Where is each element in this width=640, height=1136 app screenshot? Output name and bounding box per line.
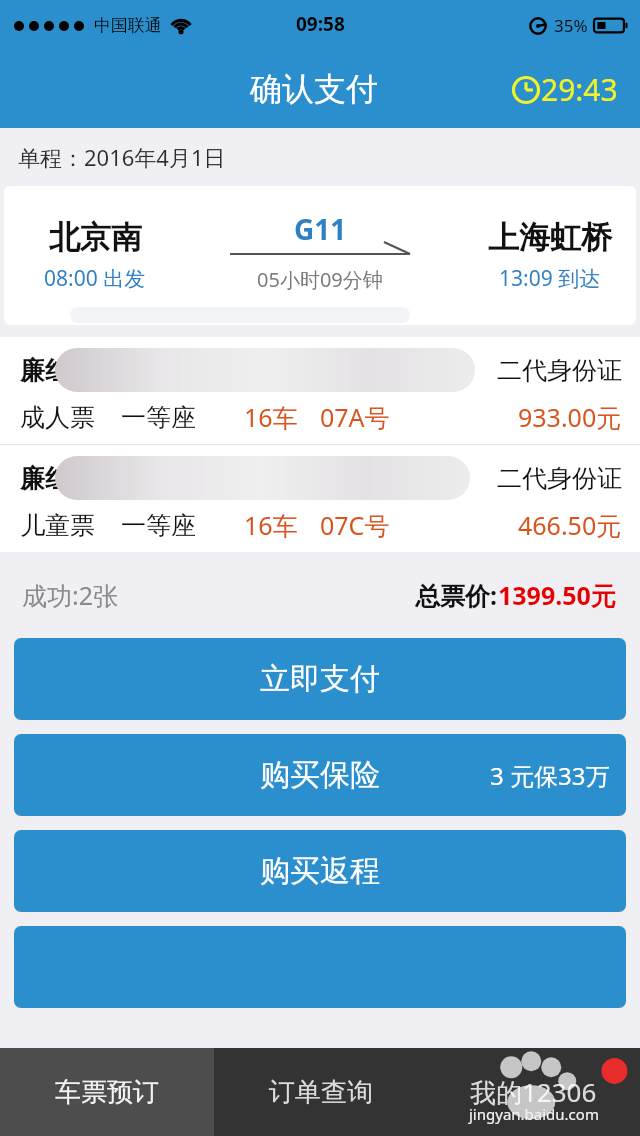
button[interactable]: 订单查询 <box>214 1048 427 1136</box>
staticText: 购买保险 <box>260 756 380 794</box>
button[interactable]: 购买返程 <box>14 830 626 912</box>
staticText: 廉红 <box>20 355 70 386</box>
button[interactable]: 廉红 <box>0 337 640 444</box>
staticText: 成功:2张 <box>22 578 119 612</box>
staticText: G11 <box>294 210 347 248</box>
button[interactable]: 购买保险 <box>14 734 626 816</box>
button[interactable]: 我的12306 <box>427 1048 640 1136</box>
staticText: 成人票 <box>20 402 95 433</box>
staticText: 1399.50元 <box>498 578 616 612</box>
staticText: 儿童票 <box>20 510 95 541</box>
staticText: 确认支付 <box>250 69 378 109</box>
staticText: 北京南 <box>49 218 142 257</box>
staticText: 立即支付 <box>260 660 380 698</box>
button[interactable]: 廉红 <box>0 445 640 552</box>
staticText: 一等座 <box>121 402 196 433</box>
staticText: 933.00元 <box>518 400 622 434</box>
staticText: 16车 <box>244 508 298 542</box>
staticText: 3 元保33万 <box>490 759 610 792</box>
staticText: 上海虹桥 <box>488 218 612 257</box>
staticText: 总票价: <box>415 578 498 612</box>
staticText: 05小时09分钟 <box>257 266 383 293</box>
other: Baidu watermark <box>427 1048 640 1136</box>
staticText: 订单查询 <box>269 1076 373 1109</box>
staticText: 一等座 <box>121 510 196 541</box>
staticText: 二代身份证 <box>497 463 622 494</box>
staticText: 单程：2016年4月1日 <box>18 142 226 172</box>
staticText: 我的12306 <box>470 1074 597 1110</box>
staticText: 车票预订 <box>55 1076 159 1109</box>
staticText: 廉红 <box>20 463 70 494</box>
staticText: 29:43 <box>541 69 618 110</box>
button[interactable]: 立即支付 <box>14 638 626 720</box>
staticText: 466.50元 <box>518 508 622 542</box>
staticText: 35% <box>554 14 588 37</box>
staticText: 07C号 <box>320 508 390 542</box>
button[interactable]: 车票预订 <box>0 1048 214 1136</box>
staticText: 中国联通 <box>94 15 162 36</box>
button[interactable]: 北京南 <box>4 186 636 325</box>
staticText: 二代身份证 <box>497 355 622 386</box>
button[interactable] <box>14 926 626 1008</box>
staticText: 07A号 <box>320 400 390 434</box>
staticText: 08:00 出发 <box>44 264 146 293</box>
staticText: 购买返程 <box>260 852 380 890</box>
staticText: 16车 <box>244 400 298 434</box>
staticText: jingyan.baidu.com <box>469 1104 599 1124</box>
staticText: 09:58 <box>296 11 345 37</box>
staticText: 13:09 到达 <box>499 264 601 293</box>
